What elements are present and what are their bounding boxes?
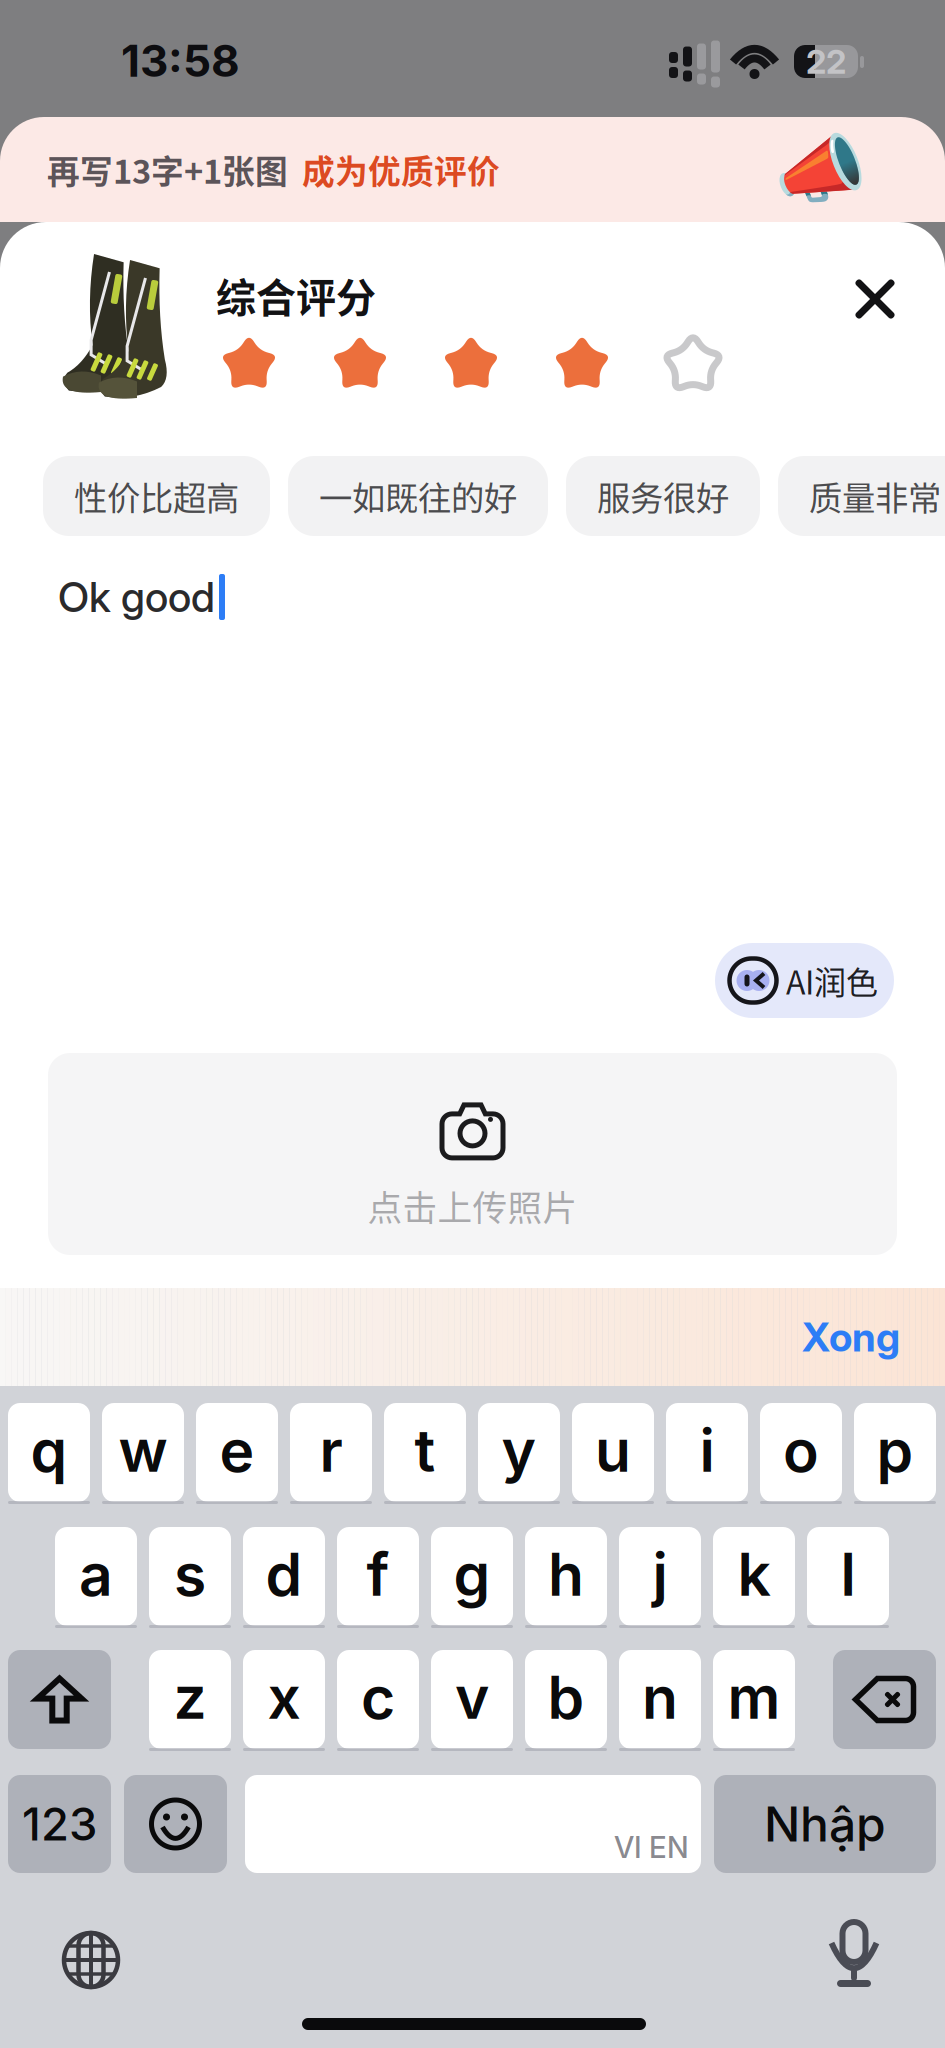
button[interactable]: Close	[820, 244, 930, 354]
button[interactable]: Emoji	[124, 1775, 227, 1873]
staticText: n	[642, 1662, 678, 1733]
button[interactable]: 一如既往的好	[288, 456, 548, 536]
staticText: Nhập	[764, 1795, 886, 1853]
staticText: 点击上传照片	[367, 1181, 577, 1231]
staticText: 性价比超高	[74, 472, 239, 520]
staticText: m	[727, 1662, 780, 1733]
button[interactable]: r	[290, 1403, 372, 1502]
button[interactable]: m	[713, 1650, 795, 1749]
staticText: x	[267, 1662, 300, 1733]
staticText: 一如既往的好	[319, 472, 517, 520]
button[interactable]: Change keyboard	[43, 1912, 139, 2008]
button[interactable]: y	[478, 1403, 560, 1502]
button[interactable]: x	[243, 1650, 325, 1749]
staticText: 再写13字+1张图	[47, 146, 302, 193]
button[interactable]: w	[102, 1403, 184, 1502]
staticText: 22	[806, 41, 846, 82]
button[interactable]: Xong	[802, 1313, 945, 1361]
staticText: 成为优质评价	[302, 146, 500, 193]
button[interactable]: l	[807, 1527, 889, 1626]
staticText: p	[876, 1415, 913, 1486]
button[interactable]: d	[243, 1527, 325, 1626]
button[interactable]: k	[713, 1527, 795, 1626]
staticText: Xong	[802, 1313, 900, 1361]
button[interactable]: n	[619, 1650, 701, 1749]
button[interactable]: o	[760, 1403, 842, 1502]
staticText: e	[219, 1415, 254, 1486]
staticText: 13:58	[121, 34, 240, 87]
staticText: g	[453, 1539, 490, 1610]
button[interactable]: Shift	[8, 1650, 111, 1749]
button[interactable]: Space	[245, 1775, 701, 1873]
staticText: 质量非常	[809, 472, 941, 520]
staticText: l	[840, 1539, 855, 1610]
button[interactable]: f	[337, 1527, 419, 1626]
button[interactable]: s	[149, 1527, 231, 1626]
button[interactable]: i	[666, 1403, 748, 1502]
button[interactable]: g	[431, 1527, 513, 1626]
button[interactable]: 点击上传照片	[48, 1053, 897, 1255]
button[interactable]: b	[525, 1650, 607, 1749]
staticText: o	[783, 1415, 819, 1486]
button[interactable]: h	[525, 1527, 607, 1626]
button[interactable]: c	[337, 1650, 419, 1749]
button[interactable]: j	[619, 1527, 701, 1626]
button[interactable]: 服务很好	[566, 456, 760, 536]
staticText: w	[118, 1415, 167, 1486]
staticText: s	[174, 1539, 206, 1610]
staticText: r	[319, 1415, 342, 1486]
button[interactable]: Dictate	[806, 1906, 902, 2002]
button[interactable]: AI润色	[715, 943, 894, 1018]
staticText: t	[414, 1415, 435, 1486]
staticText: AI润色	[786, 957, 878, 1004]
staticText: v	[455, 1662, 489, 1733]
button[interactable]: a	[55, 1527, 137, 1626]
staticText: 📣	[774, 126, 867, 213]
staticText: Ok good	[58, 572, 215, 622]
button[interactable]: u	[572, 1403, 654, 1502]
button[interactable]: q	[8, 1403, 90, 1502]
button[interactable]: Delete	[833, 1650, 936, 1749]
staticText: b	[547, 1662, 584, 1733]
staticText: i	[699, 1415, 714, 1486]
staticText: f	[366, 1539, 389, 1610]
button[interactable]: 质量非常	[778, 456, 945, 536]
button[interactable]: Nhập	[714, 1775, 936, 1873]
staticText: c	[361, 1662, 395, 1733]
button[interactable]: v	[431, 1650, 513, 1749]
button[interactable]: t	[384, 1403, 466, 1502]
button[interactable]: e	[196, 1403, 278, 1502]
staticText: z	[173, 1662, 206, 1733]
staticText: q	[30, 1415, 67, 1486]
staticText: u	[595, 1415, 631, 1486]
staticText: k	[737, 1539, 770, 1610]
staticText: a	[79, 1539, 113, 1610]
staticText: 服务很好	[597, 472, 729, 520]
button[interactable]: 性价比超高	[43, 456, 270, 536]
button[interactable]: z	[149, 1650, 231, 1749]
staticText: 123	[22, 1797, 97, 1851]
staticText: d	[265, 1539, 302, 1610]
staticText: VI EN	[614, 1829, 689, 1865]
staticText: h	[548, 1539, 584, 1610]
button[interactable]: p	[854, 1403, 936, 1502]
staticText: 综合评分	[216, 266, 376, 324]
staticText: j	[652, 1539, 667, 1610]
staticText: y	[501, 1415, 536, 1486]
button[interactable]: 123	[8, 1775, 111, 1873]
